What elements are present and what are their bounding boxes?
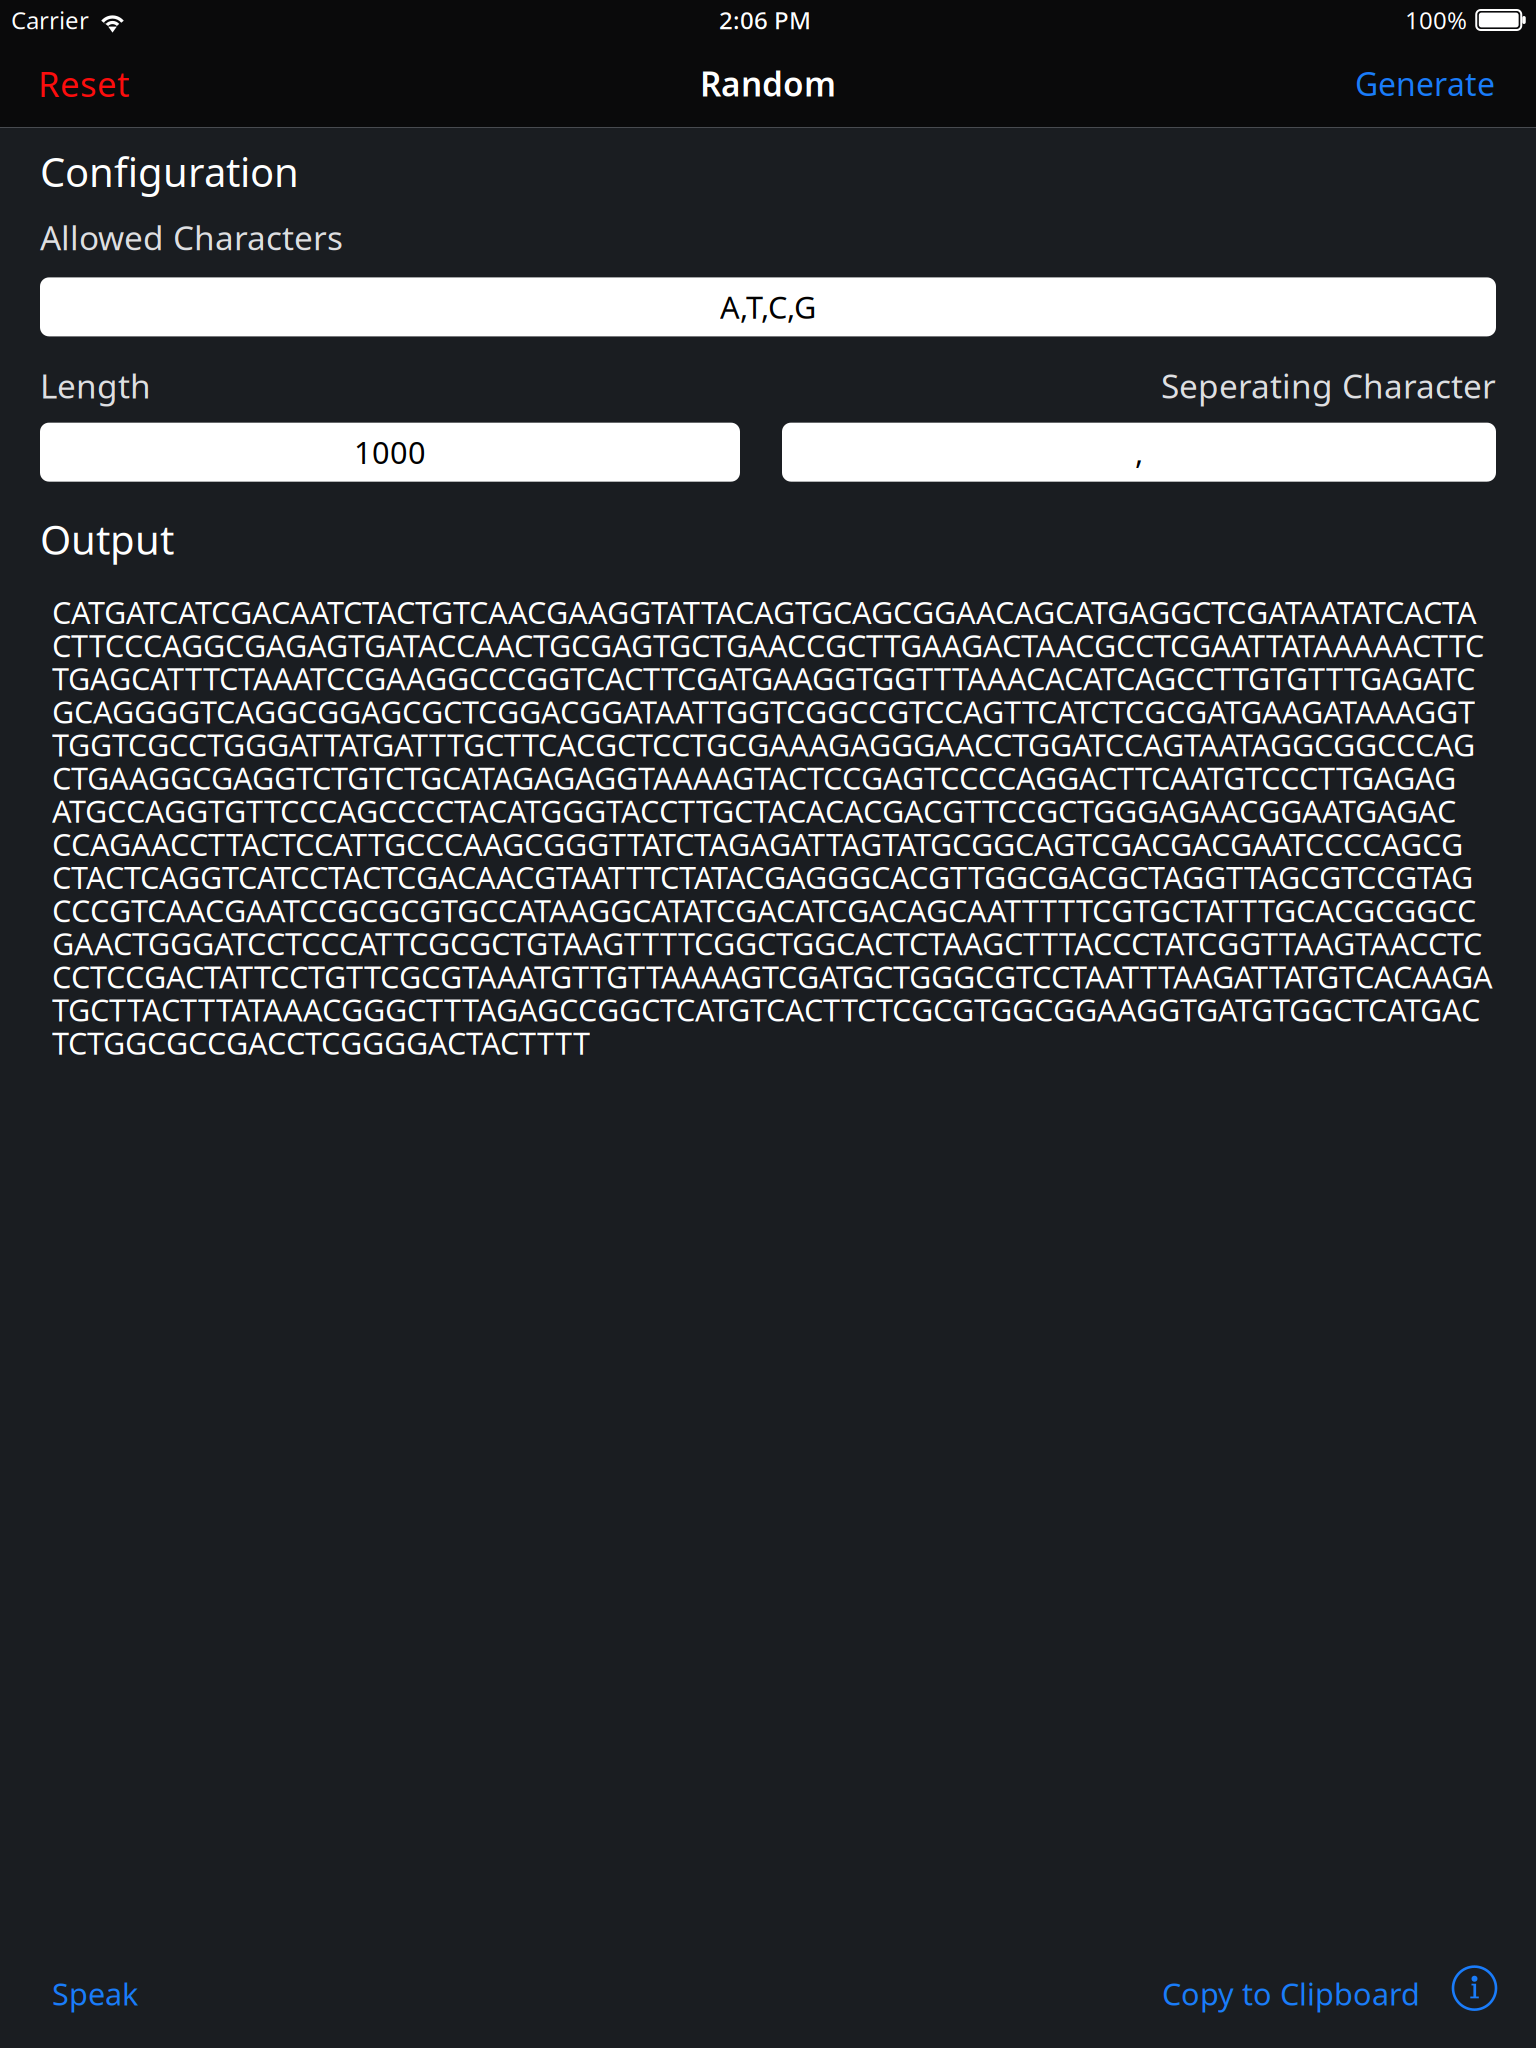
button[interactable]: Info (1432, 1965, 1496, 2023)
button[interactable]: , (782, 423, 1496, 482)
staticText: 1000 (354, 432, 426, 472)
button[interactable]: Speak (40, 1961, 150, 2026)
button[interactable]: Generate (1339, 48, 1511, 119)
button[interactable]: A,T,C,G (40, 277, 1496, 336)
staticText: Generate (1355, 62, 1495, 105)
button[interactable]: Reset (25, 46, 146, 120)
staticText: Reset (38, 60, 130, 106)
staticText: CCTCCGACTATTCCTGTTCGCGTAAATGTTGTTAAAAGTC… (52, 956, 1493, 997)
staticText: TGCTTACTTTATAAACGGGCTTTAGAGCCGGCTCATGTCA… (52, 989, 1480, 1030)
staticText: ATGCCAGGTGTTCCCAGCCCCTACATGGGTACCTTGCTAC… (52, 790, 1456, 831)
staticText: CCAGAACCTTACTCCATTGCCCAAGCGGGTTATCTAGAGA… (52, 824, 1463, 864)
staticText: A,T,C,G (720, 286, 816, 327)
staticText: CTACTCAGGTCATCCTACTCGACAACGTAATTTCTATACG… (52, 857, 1473, 897)
staticText: CCCGTCAACGAATCCGCGCGTGCCATAAGGCATATCGACA… (52, 890, 1476, 931)
staticText: GAACTGGGATCCTCCCATTCGCGCTGTAAGTTTTCGGCTG… (52, 923, 1482, 964)
staticText: Random (700, 61, 836, 106)
staticText: Copy to Clipboard (1162, 1973, 1420, 2014)
staticText: Carrier (11, 4, 89, 36)
staticText: 2:06 PM (719, 4, 811, 36)
staticText: GCAGGGGTCAGGCGGAGCGCTCGGACGGATAATTGGTCGG… (52, 691, 1475, 732)
staticText: TGGTCGCCTGGGATTATGATTTGCTTCACGCTCCTGCGAA… (52, 724, 1475, 765)
staticText: Seperating Character (1161, 363, 1496, 408)
button[interactable]: 1000 (40, 423, 740, 482)
staticText: Configuration (40, 145, 299, 198)
staticText: Speak (52, 1973, 138, 2014)
staticText: CTGAAGGCGAGGTCTGTCTGCATAGAGAGGTAAAAGTACT… (52, 757, 1456, 798)
staticText: CTTCCCAGGCGAGAGTGATACCAACTGCGAGTGCTGAACC… (52, 625, 1484, 666)
staticText: Length (40, 363, 151, 408)
staticText: Output (40, 513, 174, 566)
staticText: TCTGGCGCCGACCTCGGGGACTACTTTT (52, 1022, 590, 1063)
staticText: 100% (1405, 4, 1467, 36)
button[interactable]: Copy to Clipboard (1150, 1961, 1432, 2026)
staticText: CATGATCATCGACAATCTACTGTCAACGAAGGTATTACAG… (52, 592, 1477, 632)
staticText: , (1135, 432, 1143, 472)
staticText: Allowed Characters (40, 215, 343, 259)
staticText: TGAGCATTTCTAAATCCGAAGGCCCGGTCACTTCGATGAA… (52, 658, 1475, 699)
